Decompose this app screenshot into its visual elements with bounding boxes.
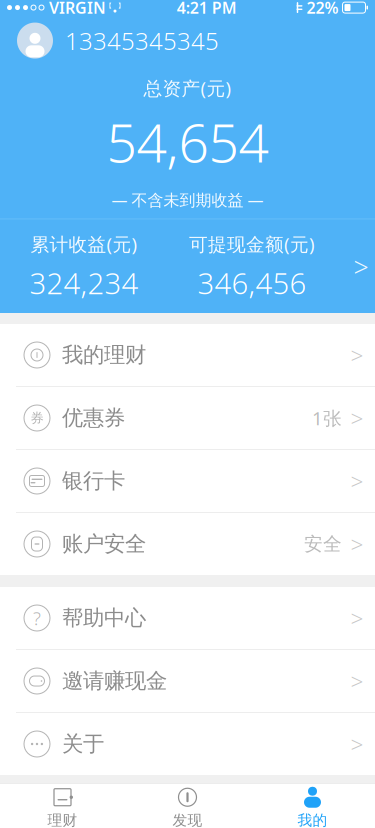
staticText: 1张 — [312, 406, 342, 430]
staticText: > — [350, 666, 363, 696]
staticText: 54,654 — [106, 106, 268, 177]
staticText: 邀请赚现金 — [62, 668, 167, 694]
button[interactable]: ? — [0, 587, 375, 649]
staticText: 优惠券 — [62, 405, 125, 431]
staticText: > — [350, 466, 363, 496]
staticText: — 不含未到期收益 — — [111, 189, 263, 210]
staticText: 安全 — [304, 532, 342, 555]
staticText: 帮助中心 — [62, 605, 146, 631]
staticText: > — [350, 529, 363, 559]
button[interactable]: 券 — [0, 387, 375, 449]
staticText: 累计收益(元) — [30, 232, 137, 256]
staticText: > — [350, 603, 363, 633]
staticText: 我的理财 — [62, 342, 146, 368]
staticText: 22% — [306, 0, 338, 18]
staticText: 银行卡 — [62, 468, 125, 494]
staticText: > — [350, 403, 363, 433]
staticText: 13345345345 — [65, 25, 219, 56]
staticText: 发现 — [172, 811, 202, 828]
button[interactable]: 我的 — [250, 784, 375, 828]
button[interactable]: 邀请赚现金 — [0, 650, 375, 712]
staticText: 总资产(元) — [143, 76, 231, 100]
staticText: > — [350, 340, 363, 370]
button[interactable]: 累计收益(元) — [0, 219, 375, 314]
staticText: 4:21 PM — [177, 0, 237, 18]
staticText: 我的 — [297, 811, 327, 828]
button[interactable]: 13345345345 — [0, 18, 375, 64]
button[interactable]: 账户安全 — [0, 513, 375, 575]
staticText: > — [353, 249, 368, 285]
button[interactable]: 关于 — [0, 713, 375, 775]
staticText: 关于 — [62, 731, 104, 757]
button[interactable]: 银行卡 — [0, 450, 375, 512]
staticText: 324,234 — [29, 263, 138, 302]
button[interactable]: 理财 — [0, 784, 125, 828]
staticText: VIRGIN — [49, 0, 106, 18]
staticText: > — [350, 729, 363, 759]
button[interactable]: 我的理财 — [0, 324, 375, 386]
staticText: 理财 — [47, 811, 77, 828]
staticText: ? — [33, 606, 41, 630]
staticText: 可提现金额(元) — [189, 232, 315, 256]
button[interactable]: 发现 — [125, 784, 250, 828]
staticText: 券 — [30, 410, 43, 426]
staticText: 账户安全 — [62, 531, 146, 557]
staticText: 346,456 — [197, 263, 306, 302]
